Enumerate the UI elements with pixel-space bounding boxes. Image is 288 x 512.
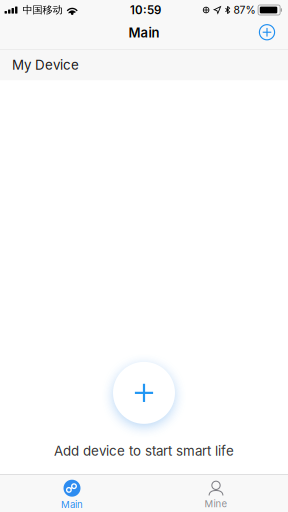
staticText: 10:59 — [130, 3, 161, 17]
staticText: Add device to start smart life — [54, 443, 234, 459]
staticText: Mine — [204, 498, 227, 509]
staticText: 中国移动 — [22, 4, 62, 16]
staticText: Main — [61, 499, 83, 510]
button[interactable]: Main — [0, 474, 144, 512]
button[interactable]: Add device — [101, 350, 187, 436]
staticText: My Device — [12, 57, 79, 73]
button[interactable]: Mine — [144, 474, 288, 511]
button[interactable]: Add device — [252, 20, 282, 44]
staticText: 87% — [234, 4, 256, 16]
staticText: Main — [128, 25, 159, 41]
